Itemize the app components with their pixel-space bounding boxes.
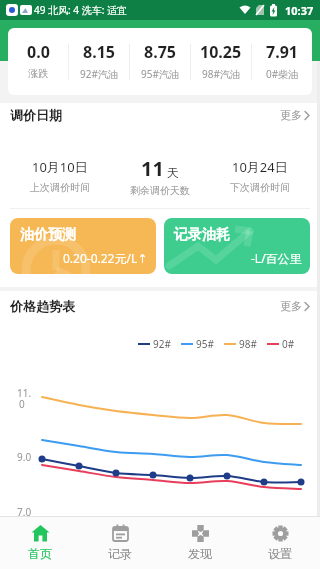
staticText: 7.0: [17, 505, 32, 519]
button[interactable]: 首页: [0, 517, 80, 569]
staticText: 首页: [28, 546, 52, 561]
staticText: 98#: [239, 337, 257, 351]
staticText: 发现: [188, 546, 212, 561]
staticText: 天: [164, 164, 180, 180]
staticText: 10月24日: [232, 158, 288, 176]
staticText: 下次调价时间: [230, 181, 290, 194]
staticText: 0: [19, 397, 25, 411]
staticText: 涨跌: [28, 67, 48, 80]
staticText: 0#: [282, 337, 295, 351]
staticText: 油价预测: [20, 226, 76, 244]
button[interactable]: 更多: [280, 108, 310, 122]
staticText: 92#: [153, 337, 171, 351]
staticText: 49 北风: 4 洗车: 适宜: [34, 3, 127, 17]
staticText: 10月10日: [32, 158, 88, 176]
staticText: 上次调价时间: [30, 181, 90, 194]
staticText: -L/百公里: [251, 250, 302, 266]
staticText: 设置: [268, 546, 292, 561]
staticText: 11.: [17, 386, 32, 400]
staticText: 剩余调价天数: [130, 184, 190, 197]
staticText: 8.15: [83, 41, 115, 63]
button[interactable]: 油价预测: [10, 218, 156, 274]
staticText: 92#汽油: [80, 67, 118, 81]
button[interactable]: 8.75: [130, 28, 190, 95]
staticText: 95#: [196, 337, 214, 351]
staticText: 0.0: [27, 41, 50, 63]
button[interactable]: 0.0: [8, 28, 68, 95]
staticText: 价格趋势表: [10, 298, 75, 314]
staticText: 0.20-0.22元/L↑: [63, 250, 148, 266]
button[interactable]: 设置: [240, 517, 320, 569]
staticText: 95#汽油: [141, 67, 179, 81]
button[interactable]: 8.15: [69, 28, 129, 95]
button[interactable]: 7.91: [252, 28, 312, 95]
staticText: 更多: [280, 299, 302, 313]
staticText: 0#柴油: [266, 67, 299, 81]
button[interactable]: 更多: [280, 299, 310, 313]
staticText: 10.25: [200, 41, 242, 63]
staticText: 8.75: [144, 41, 176, 63]
staticText: 11: [141, 155, 164, 182]
staticText: 更多: [280, 108, 302, 122]
staticText: 10:37: [285, 3, 314, 18]
staticText: 记录: [108, 546, 132, 561]
button[interactable]: 记录: [80, 517, 160, 569]
button[interactable]: 发现: [160, 517, 240, 569]
staticText: 7.91: [266, 41, 298, 63]
staticText: 调价日期: [10, 107, 62, 123]
staticText: 9.0: [17, 450, 32, 464]
button[interactable]: 10.25: [191, 28, 251, 95]
button[interactable]: 记录油耗: [164, 218, 310, 274]
staticText: 98#汽油: [202, 67, 240, 81]
staticText: 记录油耗: [174, 226, 230, 244]
